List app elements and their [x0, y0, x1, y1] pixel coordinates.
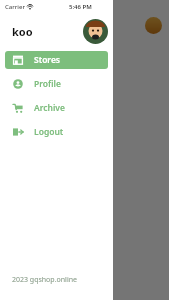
button[interactable]: Your profile	[145, 17, 162, 34]
staticText: Profile	[34, 78, 61, 90]
staticText: Stores	[34, 54, 61, 66]
staticText: Carrier	[5, 3, 25, 11]
button[interactable]: Archive	[5, 99, 108, 117]
button[interactable]: RadiantRoom	[10, 142, 159, 171]
staticText: Logout	[34, 126, 64, 138]
button[interactable]: Open navigation drawer	[7, 16, 25, 34]
button[interactable]: UrbanRetreat	[10, 43, 159, 72]
staticText: 2023 gqshop.online	[12, 275, 77, 285]
button[interactable]: Logout	[5, 123, 108, 141]
button[interactable]: Close navigation drawer	[113, 0, 169, 300]
button[interactable]: Golden Bloom	[10, 175, 159, 204]
staticText: Archive	[34, 102, 65, 114]
button[interactable]: UrbanPulse	[10, 76, 159, 105]
staticText: UrbanRetreat	[40, 52, 102, 64]
button[interactable]: LoomLuxe	[10, 208, 159, 237]
staticText: UrbanPulse	[40, 85, 92, 97]
button[interactable]: Stores	[5, 51, 108, 69]
button[interactable]: Account avatar	[83, 19, 108, 44]
button[interactable]: BlueLuxe	[10, 109, 159, 138]
staticText: 5:46 PM	[69, 3, 92, 11]
staticText: BlueLuxe	[40, 118, 82, 130]
staticText: koo	[12, 24, 33, 39]
button[interactable]: Profile	[5, 75, 108, 93]
